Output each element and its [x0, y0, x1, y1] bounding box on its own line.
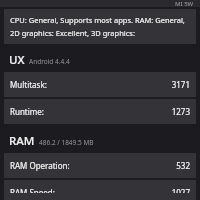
staticText: 532: [176, 160, 190, 171]
button[interactable]: Multitask:: [4, 72, 196, 97]
staticText: 3171: [171, 79, 190, 90]
staticText: Multitask:: [10, 79, 171, 90]
staticText: 486.2 / 1849.5 MB: [39, 138, 94, 147]
button[interactable]: RAM Operation:: [4, 153, 196, 178]
button[interactable]: CPU: General, Supports most apps. RAM: G…: [4, 9, 196, 44]
button[interactable]: Runtime:: [4, 99, 196, 124]
staticText: MI 5W: [175, 0, 194, 7]
staticText: Runtime:: [10, 106, 171, 117]
staticText: RAM Speed:: [10, 187, 171, 193]
button[interactable]: RAM Speed:: [4, 180, 196, 200]
staticText: RAM: [9, 133, 35, 149]
staticText: 1273: [171, 106, 190, 117]
staticText: 1027: [171, 187, 190, 193]
staticText: RAM Operation:: [10, 160, 176, 171]
staticText: Android 4.4.4: [29, 57, 70, 66]
staticText: CPU: General, Supports most apps. RAM: G…: [10, 15, 190, 38]
staticText: UX: [9, 52, 25, 68]
